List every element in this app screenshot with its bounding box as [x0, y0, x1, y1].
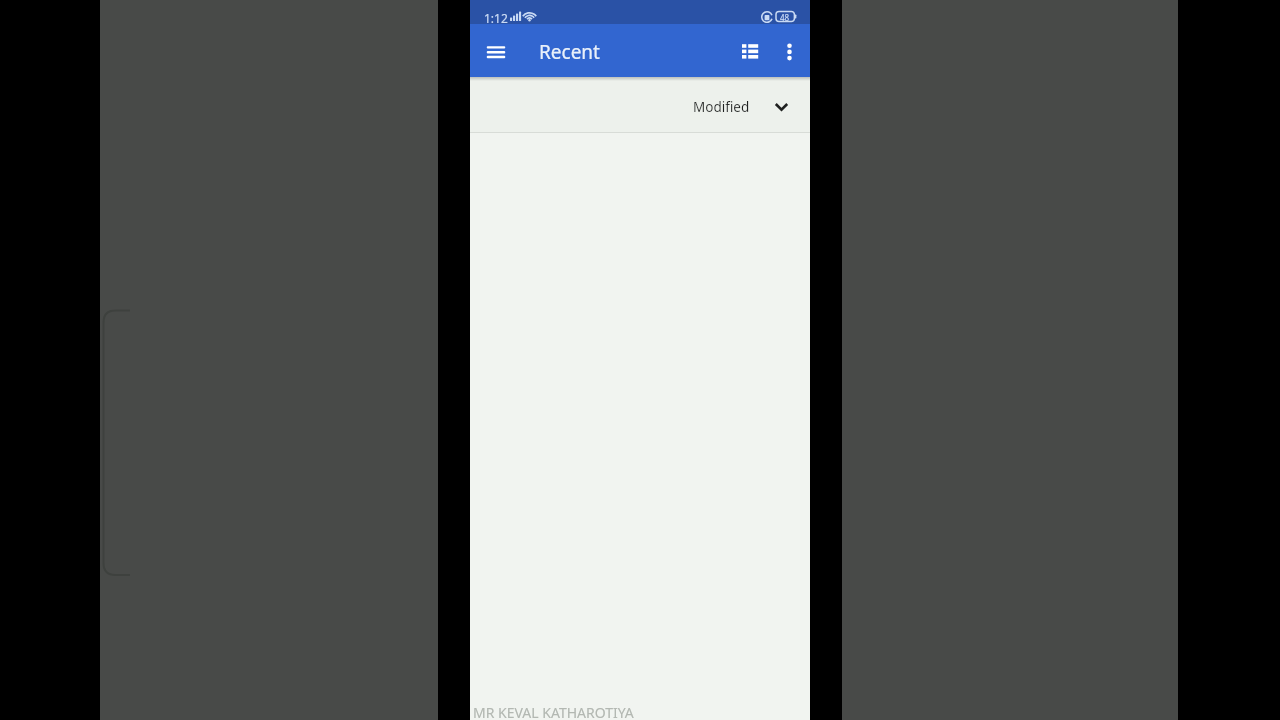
button[interactable]	[480, 36, 512, 68]
staticText: 1:12	[484, 10, 508, 26]
staticText: 48	[780, 12, 790, 23]
button[interactable]	[734, 36, 766, 68]
staticText: Recent	[539, 39, 600, 65]
button[interactable]: Modified	[470, 81, 810, 132]
button[interactable]	[774, 36, 806, 68]
staticText: MR KEVAL KATHAROTIYA	[473, 703, 634, 720]
staticText: Modified	[693, 98, 750, 116]
